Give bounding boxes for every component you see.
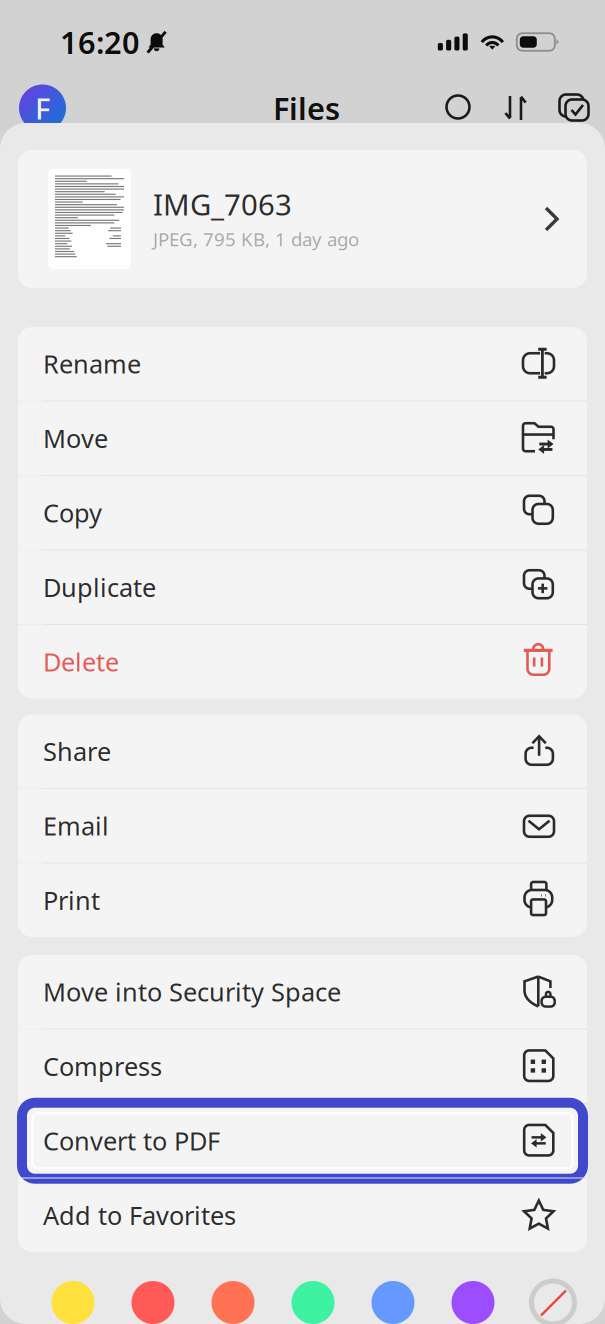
button[interactable]: Compress <box>18 1029 587 1103</box>
staticText: Print <box>43 883 100 917</box>
staticText: Move <box>43 421 108 455</box>
button[interactable]: Add to Favorites <box>18 1178 587 1252</box>
button[interactable]: Rename <box>18 327 587 400</box>
staticText: Copy <box>43 496 102 529</box>
staticText: Email <box>43 809 109 842</box>
staticText: Rename <box>43 347 141 380</box>
button[interactable]: Delete <box>18 625 587 698</box>
staticText: Delete <box>43 645 119 678</box>
button[interactable]: Tag <box>273 1281 353 1324</box>
staticText: Share <box>43 734 111 768</box>
button[interactable]: Tag <box>353 1281 433 1324</box>
staticText: JPEG, 795 KB, 1 day ago <box>153 227 359 251</box>
staticText: Compress <box>43 1049 162 1083</box>
staticText: Files <box>273 88 340 128</box>
staticText: Move into Security Space <box>43 975 341 1008</box>
button[interactable]: Tag <box>433 1281 513 1324</box>
button[interactable]: Copy <box>18 476 587 549</box>
button[interactable]: Tag <box>193 1281 273 1324</box>
button[interactable]: Remove tag <box>513 1274 593 1324</box>
button[interactable]: Move into Security Space <box>18 955 587 1028</box>
staticText: Convert to PDF <box>43 1124 220 1157</box>
button[interactable]: Move <box>18 401 587 475</box>
button[interactable]: Sort <box>487 86 545 130</box>
button[interactable]: IMG_7063 <box>18 150 587 288</box>
button[interactable]: Profile <box>19 84 66 131</box>
button[interactable]: Duplicate <box>18 550 587 624</box>
button[interactable]: Tag <box>33 1281 113 1324</box>
button[interactable]: Convert to PDF <box>18 1104 587 1177</box>
button[interactable]: Search <box>429 86 487 130</box>
staticText: F <box>35 88 50 127</box>
staticText: Duplicate <box>43 570 156 604</box>
button[interactable]: Select <box>545 86 603 130</box>
button[interactable]: Print <box>18 863 587 937</box>
button[interactable]: Email <box>18 789 587 862</box>
staticText: Add to Favorites <box>43 1198 236 1232</box>
staticText: 16:20 <box>60 22 140 62</box>
staticText: IMG_7063 <box>153 184 292 223</box>
button[interactable]: Tag <box>113 1281 193 1324</box>
button[interactable]: Share <box>18 714 587 788</box>
